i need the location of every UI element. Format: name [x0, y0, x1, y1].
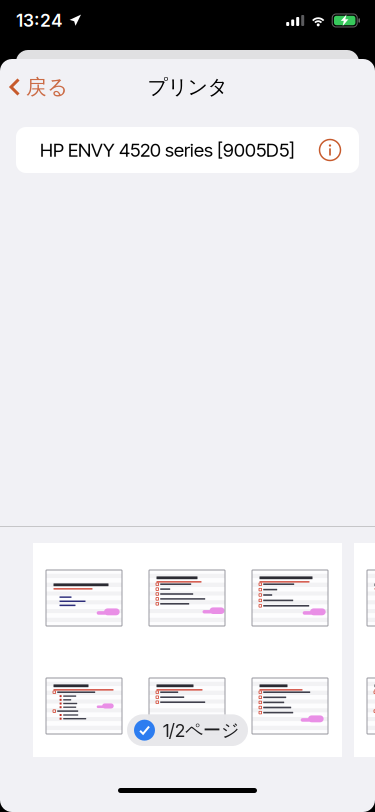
button[interactable]: 戻る	[0, 66, 80, 108]
staticText: 戻る	[26, 74, 68, 100]
staticText: プリンタ	[147, 74, 227, 100]
staticText: 1/2ページ	[163, 719, 239, 741]
staticText: HP ENVY 4520 series [9005D5]	[40, 139, 295, 161]
staticText: 13:24	[16, 10, 63, 31]
button[interactable]: HP ENVY 4520 series [9005D5]	[16, 127, 359, 173]
